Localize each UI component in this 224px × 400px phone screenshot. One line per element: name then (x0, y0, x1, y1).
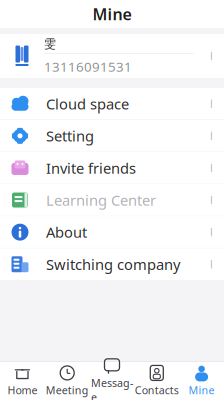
staticText: Message (91, 376, 133, 400)
staticText: Mine (189, 383, 215, 397)
button[interactable]: Cloud space (0, 88, 224, 119)
button[interactable]: Invite friends (0, 152, 224, 184)
button[interactable]: Setting (0, 120, 224, 152)
staticText: Contacts (135, 383, 179, 397)
staticText: Switching company (46, 254, 180, 274)
staticText: Home (7, 383, 37, 397)
button[interactable]: Learning Center (0, 184, 224, 216)
button[interactable]: Message (90, 362, 134, 400)
staticText: 雯 (44, 36, 56, 51)
staticText: Cloud space (46, 94, 129, 113)
staticText: 13116091531 (44, 58, 132, 75)
staticText: About (46, 222, 87, 242)
staticText: Learning Center (46, 190, 156, 210)
button[interactable]: Contacts (134, 362, 179, 400)
button[interactable]: Meeting (45, 362, 90, 400)
button[interactable]: Mine (179, 362, 224, 400)
button[interactable]: About (0, 216, 224, 248)
staticText: Mine (92, 3, 131, 25)
staticText: Meeting (46, 383, 89, 397)
button[interactable]: Home (0, 362, 45, 400)
staticText: Setting (46, 126, 94, 146)
staticText: Invite friends (46, 158, 136, 178)
button[interactable]: 雯 (0, 34, 224, 78)
button[interactable]: Switching company (0, 248, 224, 280)
